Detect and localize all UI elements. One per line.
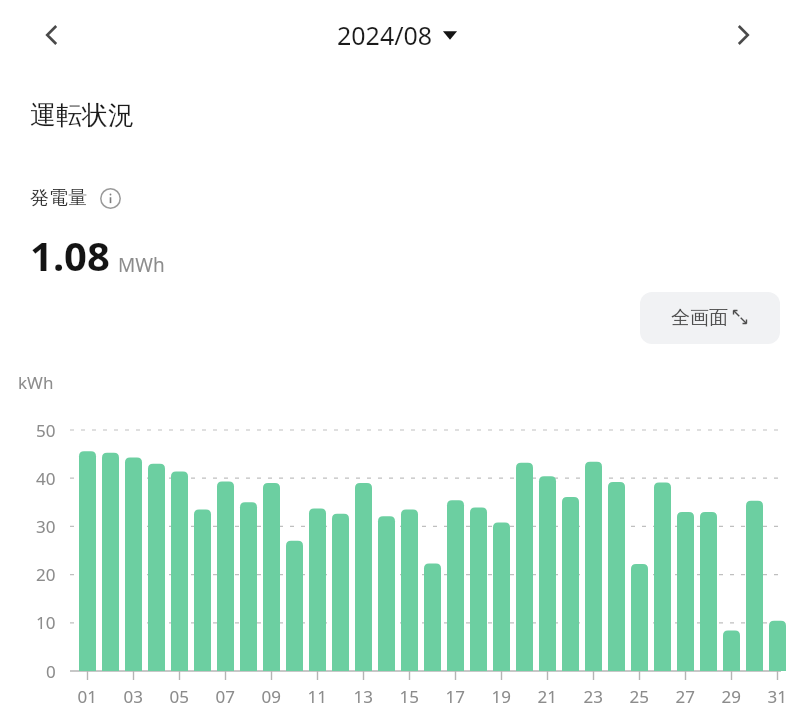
button[interactable]: 2024/08 [337,18,458,52]
staticText: 発電量 [30,186,87,210]
button[interactable]: Previous month [24,7,80,63]
staticText: MWh [118,252,165,278]
button[interactable]: 全画面 [640,292,780,344]
staticText: 1.08 [30,228,110,282]
button[interactable]: Information [97,185,123,211]
staticText: 運転状況 [30,99,134,132]
staticText: kWh [18,371,54,394]
staticText: 全画面 [671,306,728,330]
button[interactable]: Next month [715,7,771,63]
staticText: 2024/08 [337,18,433,52]
